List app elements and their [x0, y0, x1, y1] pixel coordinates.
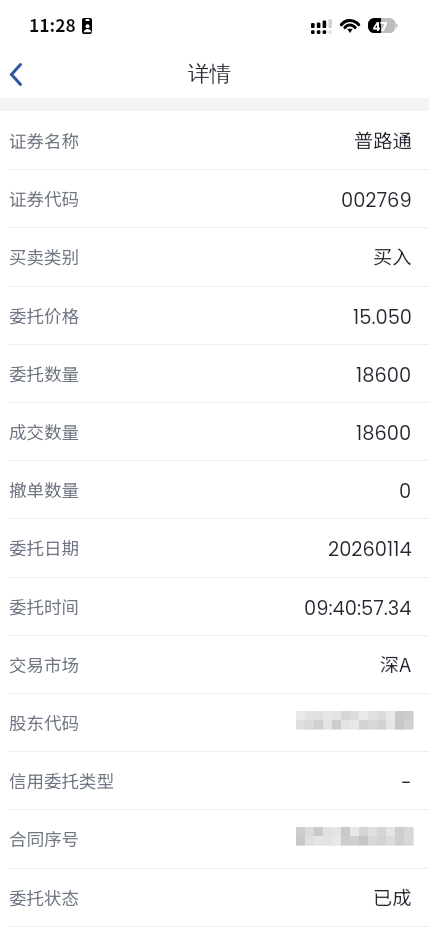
button[interactable]: 信用委托类型	[0, 751, 429, 809]
staticText: 深A	[380, 650, 412, 678]
staticText: 成交数量	[9, 419, 79, 444]
staticText: 0	[399, 478, 412, 505]
staticText: 证券名称	[9, 128, 79, 153]
staticText: 20260114	[328, 536, 412, 563]
staticText: 撤单数量	[9, 477, 79, 502]
button[interactable]: 股东代码	[0, 693, 429, 751]
staticText: 股东代码	[9, 710, 79, 735]
staticText: 09:40:57.34	[304, 595, 412, 622]
staticText: 委托数量	[9, 361, 79, 386]
staticText: 证券代码	[9, 186, 79, 211]
staticText: 买入	[373, 242, 412, 270]
staticText: 买卖类别	[9, 244, 79, 269]
button[interactable]: 委托价格	[0, 286, 429, 344]
button[interactable]: 交易市场	[0, 635, 429, 693]
button[interactable]: 成交数量	[0, 402, 429, 460]
button[interactable]: 委托状态	[0, 868, 429, 926]
button[interactable]: 委托日期	[0, 518, 429, 576]
button[interactable]: 合同序号	[0, 809, 429, 867]
staticText: 47	[373, 18, 388, 33]
staticText: 交易市场	[9, 652, 79, 677]
button[interactable]: 撤单数量	[0, 460, 429, 518]
staticText: 委托状态	[9, 885, 79, 910]
button[interactable]: 返回	[0, 48, 44, 98]
staticText: 委托价格	[9, 303, 79, 328]
staticText: 18600	[356, 362, 412, 389]
button[interactable]: 委托数量	[0, 344, 429, 402]
button[interactable]: 证券代码	[0, 169, 429, 227]
button[interactable]: 委托时间	[0, 577, 429, 635]
staticText: 11:28	[29, 12, 76, 37]
staticText: 信用委托类型	[9, 768, 114, 793]
staticText: 002769	[341, 187, 412, 214]
button[interactable]: 买卖类别	[0, 227, 429, 285]
staticText: 已成	[373, 883, 412, 911]
staticText: 委托日期	[9, 535, 79, 560]
staticText: 18600	[356, 420, 412, 447]
staticText: 15.050	[353, 304, 412, 331]
staticText: 详情	[188, 60, 231, 87]
staticText: -	[401, 769, 412, 796]
button[interactable]: 证券名称	[0, 111, 429, 169]
staticText: 普路通	[354, 126, 412, 154]
staticText: 合同序号	[9, 826, 79, 851]
staticText: 委托时间	[9, 594, 79, 619]
